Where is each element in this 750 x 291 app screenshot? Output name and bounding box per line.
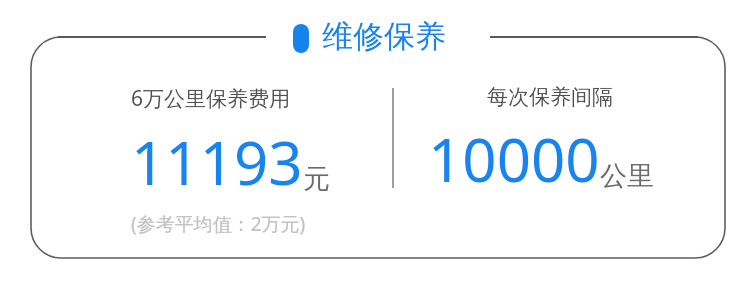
staticText: 每次保养间隔 [428, 84, 672, 110]
other: Section marker [293, 24, 309, 53]
button[interactable]: 6万公里保养费用 [131, 84, 330, 237]
staticText: (参考平均值：2万元) [131, 211, 306, 237]
staticText: 10000 [428, 118, 600, 200]
button[interactable]: 每次保养间隔 [428, 84, 672, 200]
staticText: 元 [303, 162, 330, 196]
staticText: 公里 [600, 159, 654, 193]
staticText: 维修保养 [322, 17, 446, 56]
staticText: 11193 [131, 121, 303, 203]
staticText: 6万公里保养费用 [131, 84, 291, 113]
